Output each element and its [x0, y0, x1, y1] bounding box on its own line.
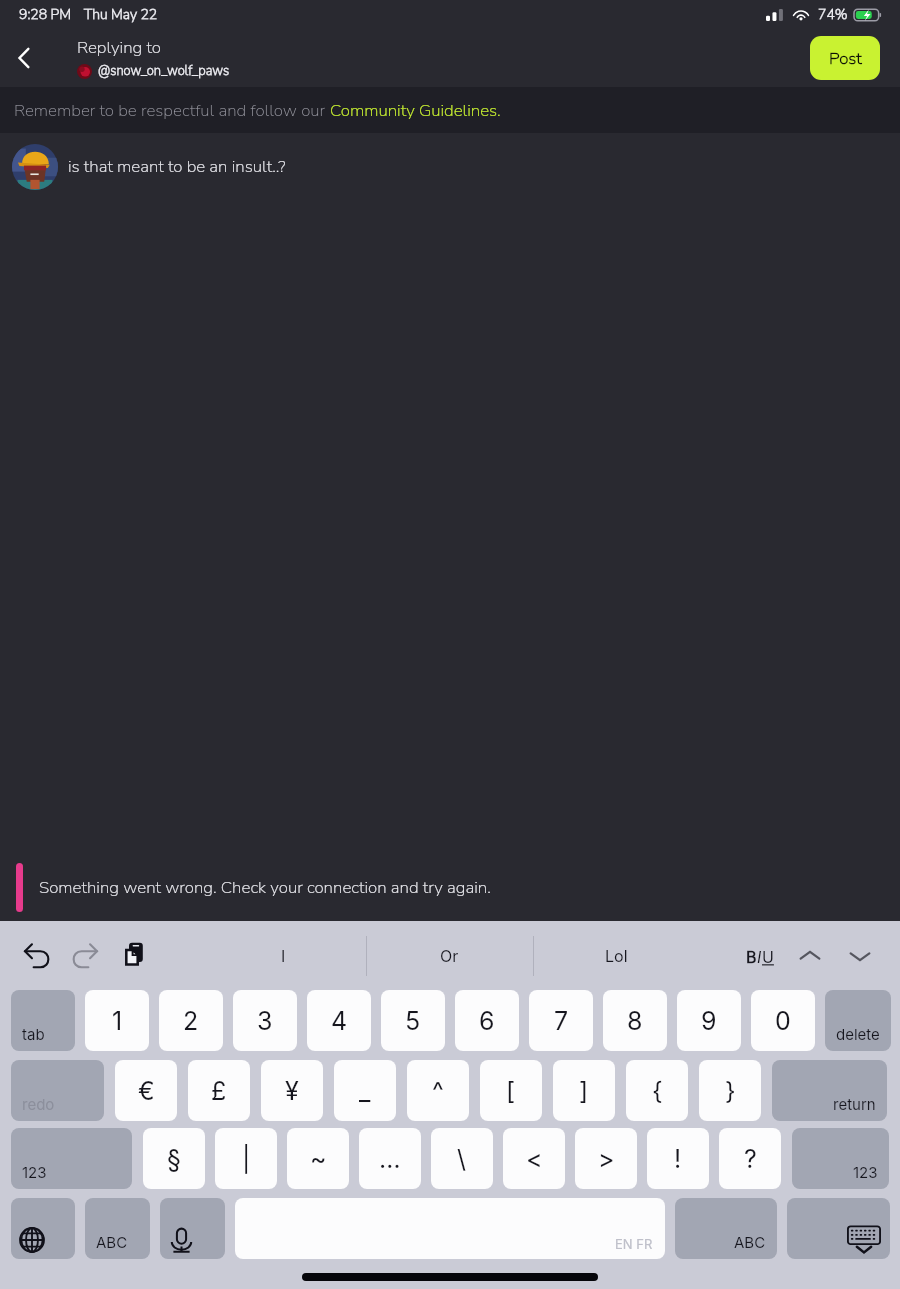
- staticText: ABC: [96, 1233, 128, 1251]
- button[interactable]: 4: [307, 990, 371, 1051]
- button[interactable]: \: [431, 1128, 493, 1189]
- staticText: !: [674, 1144, 682, 1174]
- button[interactable]: 5: [381, 990, 445, 1051]
- staticText: \: [457, 1144, 467, 1174]
- staticText: I: [757, 947, 762, 966]
- button[interactable]: >: [575, 1128, 637, 1189]
- staticText: 6: [479, 1006, 495, 1036]
- button[interactable]: 3: [233, 990, 297, 1051]
- staticText: delete: [836, 1025, 880, 1043]
- staticText: @snow_on_wolf_paws: [98, 62, 230, 80]
- button[interactable]: I: [200, 921, 366, 990]
- staticText: 123: [22, 1163, 47, 1181]
- button[interactable]: _: [334, 1060, 396, 1121]
- staticText: [: [506, 1076, 516, 1106]
- button[interactable]: Redo: [65, 936, 105, 976]
- staticText: ?: [744, 1144, 757, 1174]
- staticText: Something went wrong. Check your connect…: [39, 876, 491, 899]
- staticText: |: [242, 1144, 251, 1174]
- button[interactable]: §: [143, 1128, 205, 1189]
- staticText: 0: [775, 1006, 791, 1036]
- staticText: Remember to be respectful and follow our: [14, 99, 330, 122]
- staticText: 1: [112, 1006, 123, 1036]
- staticText: ~: [310, 1144, 327, 1174]
- button[interactable]: Previous field: [790, 936, 830, 976]
- button[interactable]: 6: [455, 990, 519, 1051]
- button[interactable]: ^: [407, 1060, 469, 1121]
- staticText: 8: [627, 1006, 643, 1036]
- staticText: …: [379, 1144, 401, 1174]
- staticText: €: [138, 1076, 155, 1106]
- button[interactable]: ?: [719, 1128, 781, 1189]
- button[interactable]: {: [626, 1060, 688, 1121]
- staticText: Thu May 22: [84, 5, 158, 24]
- staticText: ^: [432, 1076, 444, 1106]
- button[interactable]: Dictate: [160, 1198, 225, 1259]
- staticText: return: [833, 1095, 876, 1113]
- button[interactable]: Paste: [115, 936, 155, 976]
- button[interactable]: ABC: [675, 1198, 777, 1259]
- staticText: B: [746, 947, 757, 966]
- staticText: §: [167, 1144, 181, 1174]
- button[interactable]: 8: [603, 990, 667, 1051]
- button[interactable]: !: [647, 1128, 709, 1189]
- staticText: }: [725, 1076, 736, 1106]
- staticText: ABC: [734, 1233, 766, 1251]
- button[interactable]: £: [188, 1060, 250, 1121]
- button[interactable]: Back: [0, 28, 50, 87]
- button[interactable]: 1: [85, 990, 149, 1051]
- staticText: _: [359, 1076, 371, 1106]
- button[interactable]: 123: [11, 1128, 132, 1189]
- button[interactable]: Space: [235, 1198, 665, 1259]
- button[interactable]: 2: [159, 990, 223, 1051]
- button[interactable]: 9: [677, 990, 741, 1051]
- button[interactable]: B: [744, 947, 776, 966]
- button[interactable]: €: [115, 1060, 177, 1121]
- staticText: redo: [22, 1095, 55, 1113]
- button[interactable]: ¥: [261, 1060, 323, 1121]
- staticText: 9: [701, 1006, 717, 1036]
- button[interactable]: 123: [792, 1128, 889, 1189]
- button[interactable]: }: [699, 1060, 761, 1121]
- staticText: Community Guidelines.: [330, 99, 501, 122]
- button[interactable]: tab: [11, 990, 75, 1051]
- staticText: 3: [257, 1006, 273, 1036]
- staticText: >: [598, 1144, 615, 1174]
- button[interactable]: 0: [751, 990, 815, 1051]
- staticText: 4: [331, 1006, 348, 1036]
- staticText: £: [211, 1076, 227, 1106]
- staticText: 7: [554, 1006, 569, 1036]
- staticText: ]: [579, 1076, 589, 1106]
- button[interactable]: Hide keyboard: [787, 1198, 890, 1259]
- button[interactable]: Switch keyboard language: [11, 1198, 75, 1259]
- staticText: 9:28 PM: [19, 5, 72, 24]
- button[interactable]: Or: [366, 921, 533, 990]
- button[interactable]: Post: [810, 36, 880, 80]
- staticText: ¥: [285, 1076, 299, 1106]
- button[interactable]: return: [772, 1060, 887, 1121]
- staticText: 123: [853, 1163, 878, 1181]
- button[interactable]: …: [359, 1128, 421, 1189]
- button[interactable]: ~: [287, 1128, 349, 1189]
- button[interactable]: ]: [553, 1060, 615, 1121]
- button[interactable]: redo: [11, 1060, 104, 1121]
- staticText: Lol: [605, 946, 628, 965]
- staticText: 5: [405, 1006, 421, 1036]
- button[interactable]: Next field: [840, 936, 880, 976]
- staticText: Replying to: [77, 36, 161, 59]
- button[interactable]: ABC: [85, 1198, 150, 1259]
- button[interactable]: 7: [529, 990, 593, 1051]
- staticText: EN FR: [615, 1236, 653, 1252]
- staticText: is that meant to be an insult..?: [68, 155, 286, 178]
- button[interactable]: |: [215, 1128, 277, 1189]
- staticText: 74%: [818, 5, 848, 24]
- staticText: Post: [829, 47, 862, 70]
- button[interactable]: Remember to be respectful and follow our: [0, 87, 900, 133]
- button[interactable]: delete: [825, 990, 891, 1051]
- staticText: U: [762, 947, 774, 966]
- button[interactable]: [: [480, 1060, 542, 1121]
- button[interactable]: <: [503, 1128, 565, 1189]
- button[interactable]: Lol: [533, 921, 700, 990]
- staticText: Or: [440, 946, 459, 965]
- button[interactable]: Undo: [17, 936, 57, 976]
